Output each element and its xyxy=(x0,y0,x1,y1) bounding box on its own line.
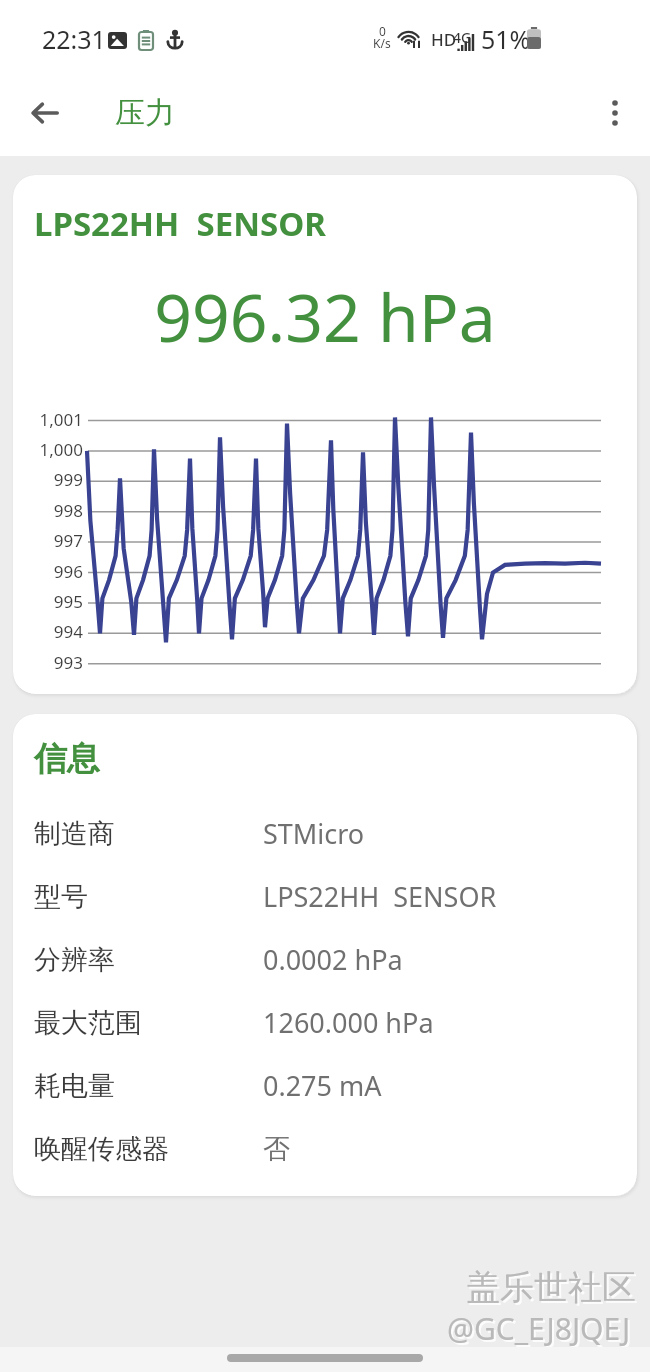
button[interactable]: 制造商 xyxy=(34,802,637,865)
staticText: 51% xyxy=(481,22,531,56)
staticText: 分辨率 xyxy=(34,943,263,977)
staticText: 993 xyxy=(23,651,83,674)
staticText: 994 xyxy=(23,620,83,643)
staticText: @GC_EJ8JQEJ xyxy=(447,1308,631,1349)
staticText: 盖乐世社区 xyxy=(468,1268,638,1311)
staticText: 唤醒传感器 xyxy=(34,1132,263,1166)
staticText: K/s xyxy=(373,35,391,51)
staticText: 999 xyxy=(23,468,83,491)
staticText: 耗电量 xyxy=(34,1069,263,1103)
staticText: LPS22HH SENSOR xyxy=(263,878,497,915)
staticText: 1,001 xyxy=(23,408,83,431)
staticText: 4G xyxy=(453,28,472,47)
staticText: HD xyxy=(431,28,457,51)
staticText: 1,000 xyxy=(23,438,83,461)
staticText: 0 xyxy=(379,23,386,39)
staticText: 信息 xyxy=(34,738,100,780)
staticText: 996 xyxy=(23,560,83,583)
staticText: 997 xyxy=(23,529,83,552)
button[interactable]: 型号 xyxy=(34,865,637,928)
staticText: 否 xyxy=(263,1132,290,1166)
staticText: @GC_EJ8JQEJ xyxy=(449,1310,633,1351)
button[interactable]: Back xyxy=(14,82,76,144)
staticText: 制造商 xyxy=(34,817,263,851)
button[interactable]: 分辨率 xyxy=(34,928,637,991)
button[interactable]: More options xyxy=(584,82,646,144)
button[interactable]: 唤醒传感器 xyxy=(34,1117,637,1180)
staticText: 压力 xyxy=(115,94,175,132)
staticText: 998 xyxy=(23,499,83,522)
staticText: STMicro xyxy=(263,815,365,852)
button[interactable]: 最大范围 xyxy=(34,991,637,1054)
staticText: 996.32 hPa xyxy=(13,271,637,361)
staticText: 22:31 xyxy=(42,22,106,56)
staticText: LPS22HH SENSOR xyxy=(34,201,326,246)
staticText: 盖乐世社区 xyxy=(466,1266,636,1309)
staticText: 0.0002 hPa xyxy=(263,941,403,978)
button[interactable]: 耗电量 xyxy=(34,1054,637,1117)
staticText: 995 xyxy=(23,590,83,613)
staticText: 最大范围 xyxy=(34,1006,263,1040)
staticText: 型号 xyxy=(34,880,263,914)
staticText: 1260.000 hPa xyxy=(263,1004,434,1041)
staticText: 0.275 mA xyxy=(263,1067,382,1104)
